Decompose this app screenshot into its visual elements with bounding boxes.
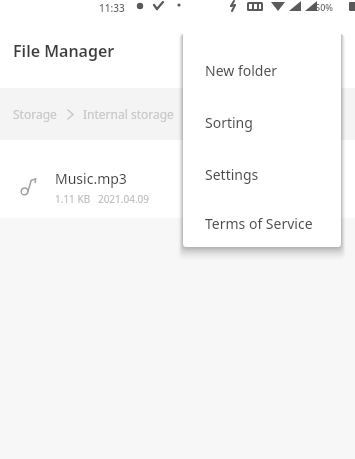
button[interactable]: Settings <box>183 148 341 200</box>
staticText: Internal storage <box>83 106 174 122</box>
button[interactable]: Storage <box>13 106 57 122</box>
staticText: 50% <box>315 1 333 13</box>
staticText: 11:33 <box>99 1 125 14</box>
button[interactable]: Internal storage <box>83 106 174 122</box>
staticText: Music.mp3 <box>55 169 127 188</box>
staticText: 1.11 KB 2021.04.09 <box>55 192 150 206</box>
staticText: File Manager <box>13 40 115 62</box>
staticText: Settings <box>205 165 259 184</box>
button[interactable]: Sorting <box>183 96 341 148</box>
staticText: Sorting <box>205 113 253 132</box>
button[interactable]: More options <box>315 31 355 71</box>
button[interactable]: Music.mp3 <box>0 156 355 218</box>
staticText: Storage <box>13 106 57 122</box>
button[interactable]: Terms of Service <box>183 200 341 247</box>
staticText: New folder <box>205 61 278 80</box>
button[interactable]: New folder <box>183 31 341 96</box>
staticText: Terms of Service <box>205 214 313 233</box>
